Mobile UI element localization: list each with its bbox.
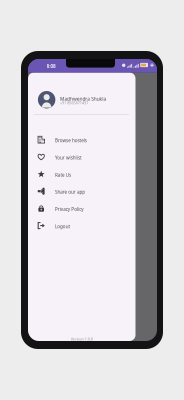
staticText: +91 8565671437 [60, 100, 184, 157]
staticText: Rate Us [55, 172, 184, 229]
staticText: Rs 1,2 [28, 142, 145, 199]
button[interactable]: Rate Us [28, 165, 135, 183]
staticText: Privacy Policy [55, 206, 184, 263]
staticText: Your wishlist [55, 155, 184, 211]
button[interactable]: Privacy Policy [28, 200, 135, 217]
staticText: Version 1.0.0 [71, 336, 184, 393]
button[interactable]: Share our app [28, 183, 135, 200]
button[interactable]: Logout [28, 217, 135, 234]
staticText: Share our app [55, 189, 184, 246]
staticText: Browse hostels [55, 137, 184, 194]
button[interactable]: Browse hostels [28, 131, 135, 148]
staticText: 8:08 [46, 63, 130, 120]
button[interactable]: Madhwendra Shukla [28, 90, 135, 109]
staticText: Madhwendra Shukla [60, 96, 184, 152]
button[interactable]: Your wishlist [28, 148, 135, 165]
staticText: Logout [55, 223, 184, 280]
